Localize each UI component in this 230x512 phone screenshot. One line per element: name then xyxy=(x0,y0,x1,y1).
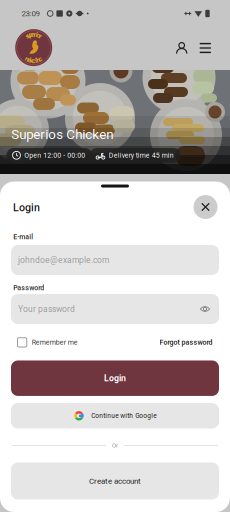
button[interactable]: Continue with Google xyxy=(11,403,219,429)
staticText: e xyxy=(32,56,36,65)
staticText: Login xyxy=(104,373,126,383)
button[interactable]: Create account xyxy=(11,462,219,499)
button[interactable]: Forgot password xyxy=(156,338,212,347)
button[interactable]: Close xyxy=(193,195,217,219)
staticText: c xyxy=(32,56,36,65)
staticText: Login xyxy=(13,201,40,214)
staticText: Password xyxy=(13,284,44,292)
staticText: Superios Chicken xyxy=(11,127,113,142)
staticText: r xyxy=(33,30,35,38)
staticText: h xyxy=(32,56,36,65)
button[interactable]: Show password xyxy=(198,302,212,316)
staticText: Create account xyxy=(89,476,141,486)
staticText: Open 12:00 - 00:00 xyxy=(24,151,85,159)
staticText: Forgot password xyxy=(159,338,212,347)
staticText: n xyxy=(32,56,36,65)
button[interactable]: Login xyxy=(11,360,219,396)
staticText: johndoe@example.com xyxy=(18,255,109,265)
staticText: o xyxy=(32,30,36,38)
staticText: r xyxy=(33,30,35,38)
staticText: k xyxy=(32,56,36,65)
staticText: i xyxy=(33,56,35,65)
staticText: i xyxy=(33,30,35,38)
staticText: 23:09 xyxy=(21,9,39,18)
button[interactable]: Account xyxy=(171,37,193,59)
staticText: c xyxy=(32,56,36,65)
staticText: E-mail xyxy=(13,233,33,241)
button[interactable]: Menu xyxy=(194,37,216,59)
staticText: Or xyxy=(112,442,118,449)
staticText: s xyxy=(32,30,35,38)
staticText: u xyxy=(32,30,36,38)
button[interactable]: Remember me xyxy=(17,338,79,347)
staticText: Remember me xyxy=(32,338,78,347)
staticText: e xyxy=(32,30,36,38)
staticText: Your password xyxy=(18,304,75,314)
staticText: Continue with Google xyxy=(91,412,156,420)
staticText: Delivery time 45 min xyxy=(109,151,174,159)
staticText: p xyxy=(32,30,36,38)
